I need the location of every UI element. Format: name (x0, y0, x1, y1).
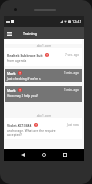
button[interactable]: Open navigation menu (5, 29, 14, 38)
button[interactable]: Recent apps (60, 150, 70, 160)
button[interactable]: Back (18, 150, 28, 160)
staticText: 1 min. ago (64, 88, 79, 92)
button[interactable]: Mark (5, 86, 82, 102)
staticText: 1 min. ago (64, 71, 79, 75)
staticText: Mark (7, 88, 16, 92)
staticText: How may I help you? (7, 94, 38, 98)
button[interactable]: Mark (5, 69, 82, 82)
staticText: from agenda (7, 59, 27, 63)
staticText: Training (23, 31, 38, 36)
staticText: Mark (7, 71, 16, 75)
staticText: Violet-KC13684 (7, 123, 32, 127)
staticText: abc1.com (4, 114, 84, 118)
staticText: abc1.com (4, 44, 84, 48)
button[interactable]: Home (39, 150, 49, 160)
staticText: 12:41 (72, 19, 82, 24)
staticText: 7 sec. ago (65, 53, 79, 57)
button[interactable]: Realtek Subbrace Suit (5, 48, 82, 66)
staticText: Realtek Subbrace Suit (7, 53, 43, 57)
button[interactable]: Violet-KC13684 (5, 118, 82, 139)
staticText: anchorage. What are the require (7, 129, 56, 133)
staticText: Just checking if we're s (7, 77, 41, 81)
staticText: accepted? (7, 133, 22, 137)
staticText: Just now (67, 123, 79, 127)
